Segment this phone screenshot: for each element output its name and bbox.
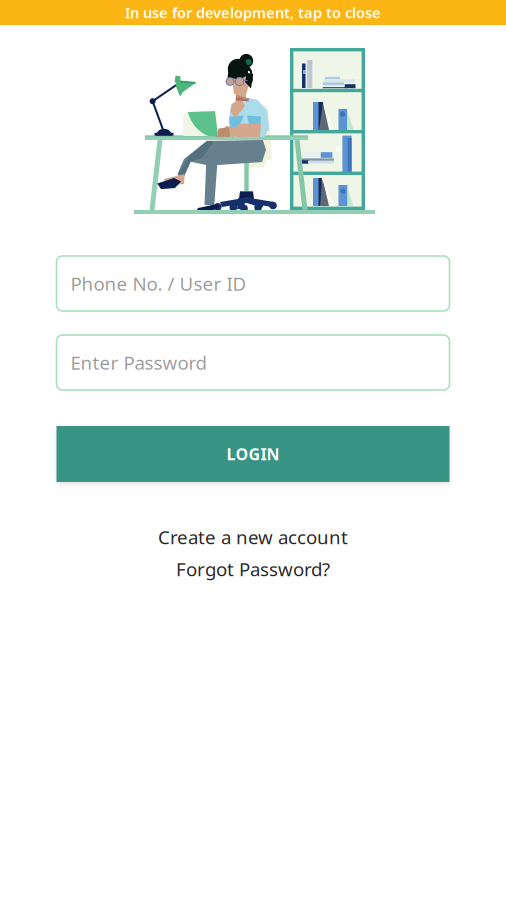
staticText: Create a new account bbox=[158, 525, 348, 549]
staticText: Enter Password bbox=[70, 350, 206, 375]
button[interactable]: LOGIN bbox=[56, 426, 449, 482]
button[interactable]: In use for development, tap to close bbox=[0, 0, 506, 25]
staticText: In use for development, tap to close bbox=[125, 3, 381, 22]
button[interactable]: Forgot Password? bbox=[176, 559, 330, 579]
button[interactable]: Create a new account bbox=[158, 527, 348, 547]
staticText: Phone No. / User ID bbox=[70, 271, 246, 296]
staticText: LOGIN bbox=[226, 443, 279, 465]
staticText: Forgot Password? bbox=[176, 557, 330, 581]
